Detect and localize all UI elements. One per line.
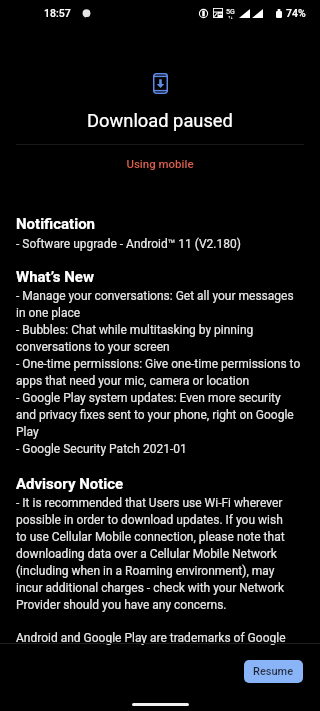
other: Software update download bbox=[153, 73, 168, 94]
staticText: - It is recommended that Users use Wi-Fi… bbox=[16, 496, 285, 612]
staticText: Android and Google Play are trademarks o… bbox=[16, 631, 286, 645]
staticText: - Manage your conversations: Get all you… bbox=[16, 289, 301, 456]
button[interactable]: Resume bbox=[244, 660, 303, 683]
other: Messages notification bbox=[82, 9, 91, 18]
staticText: Advisory Notice bbox=[16, 475, 124, 493]
staticText: Notification bbox=[16, 215, 96, 233]
staticText: Resume bbox=[253, 665, 294, 678]
staticText: 74% bbox=[286, 7, 306, 19]
staticText: Download paused bbox=[0, 110, 320, 131]
staticText: 5G bbox=[226, 8, 235, 16]
staticText: 18:57 bbox=[44, 7, 71, 19]
staticText: Using mobile bbox=[0, 157, 320, 170]
staticText: - Software upgrade - Android™ 11 (V2.180… bbox=[16, 237, 241, 251]
staticText: What’s New bbox=[16, 268, 94, 286]
